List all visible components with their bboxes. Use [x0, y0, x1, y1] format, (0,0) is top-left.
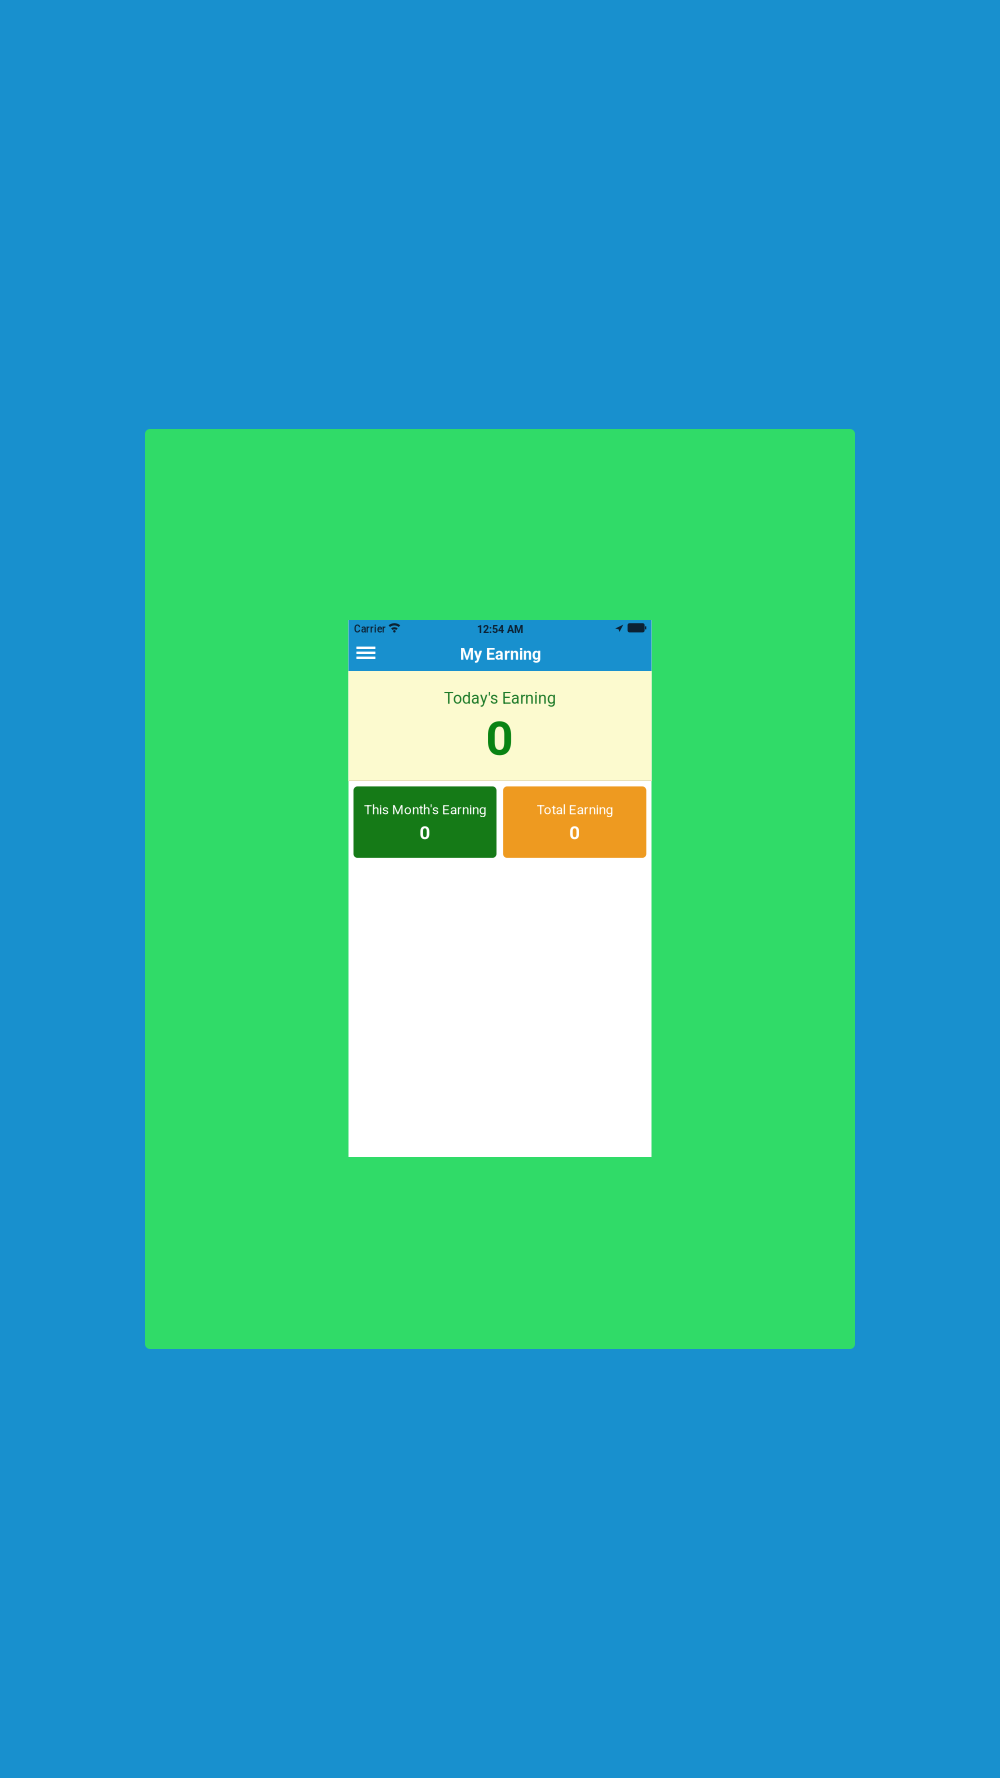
staticText: 0 [419, 822, 430, 844]
staticText: 12:54 AM [477, 623, 523, 635]
staticText: 0 [569, 822, 580, 844]
staticText: 0 [486, 711, 514, 767]
button[interactable]: Total Earning [503, 786, 646, 858]
staticText: My Earning [460, 645, 541, 664]
staticText: Today's Earning [444, 689, 556, 708]
button[interactable]: Open menu [348, 640, 385, 664]
button[interactable]: This Month's Earning [353, 786, 496, 858]
staticText: This Month's Earning [364, 802, 486, 817]
staticText: Total Earning [537, 802, 613, 817]
staticText: Carrier [354, 623, 386, 635]
